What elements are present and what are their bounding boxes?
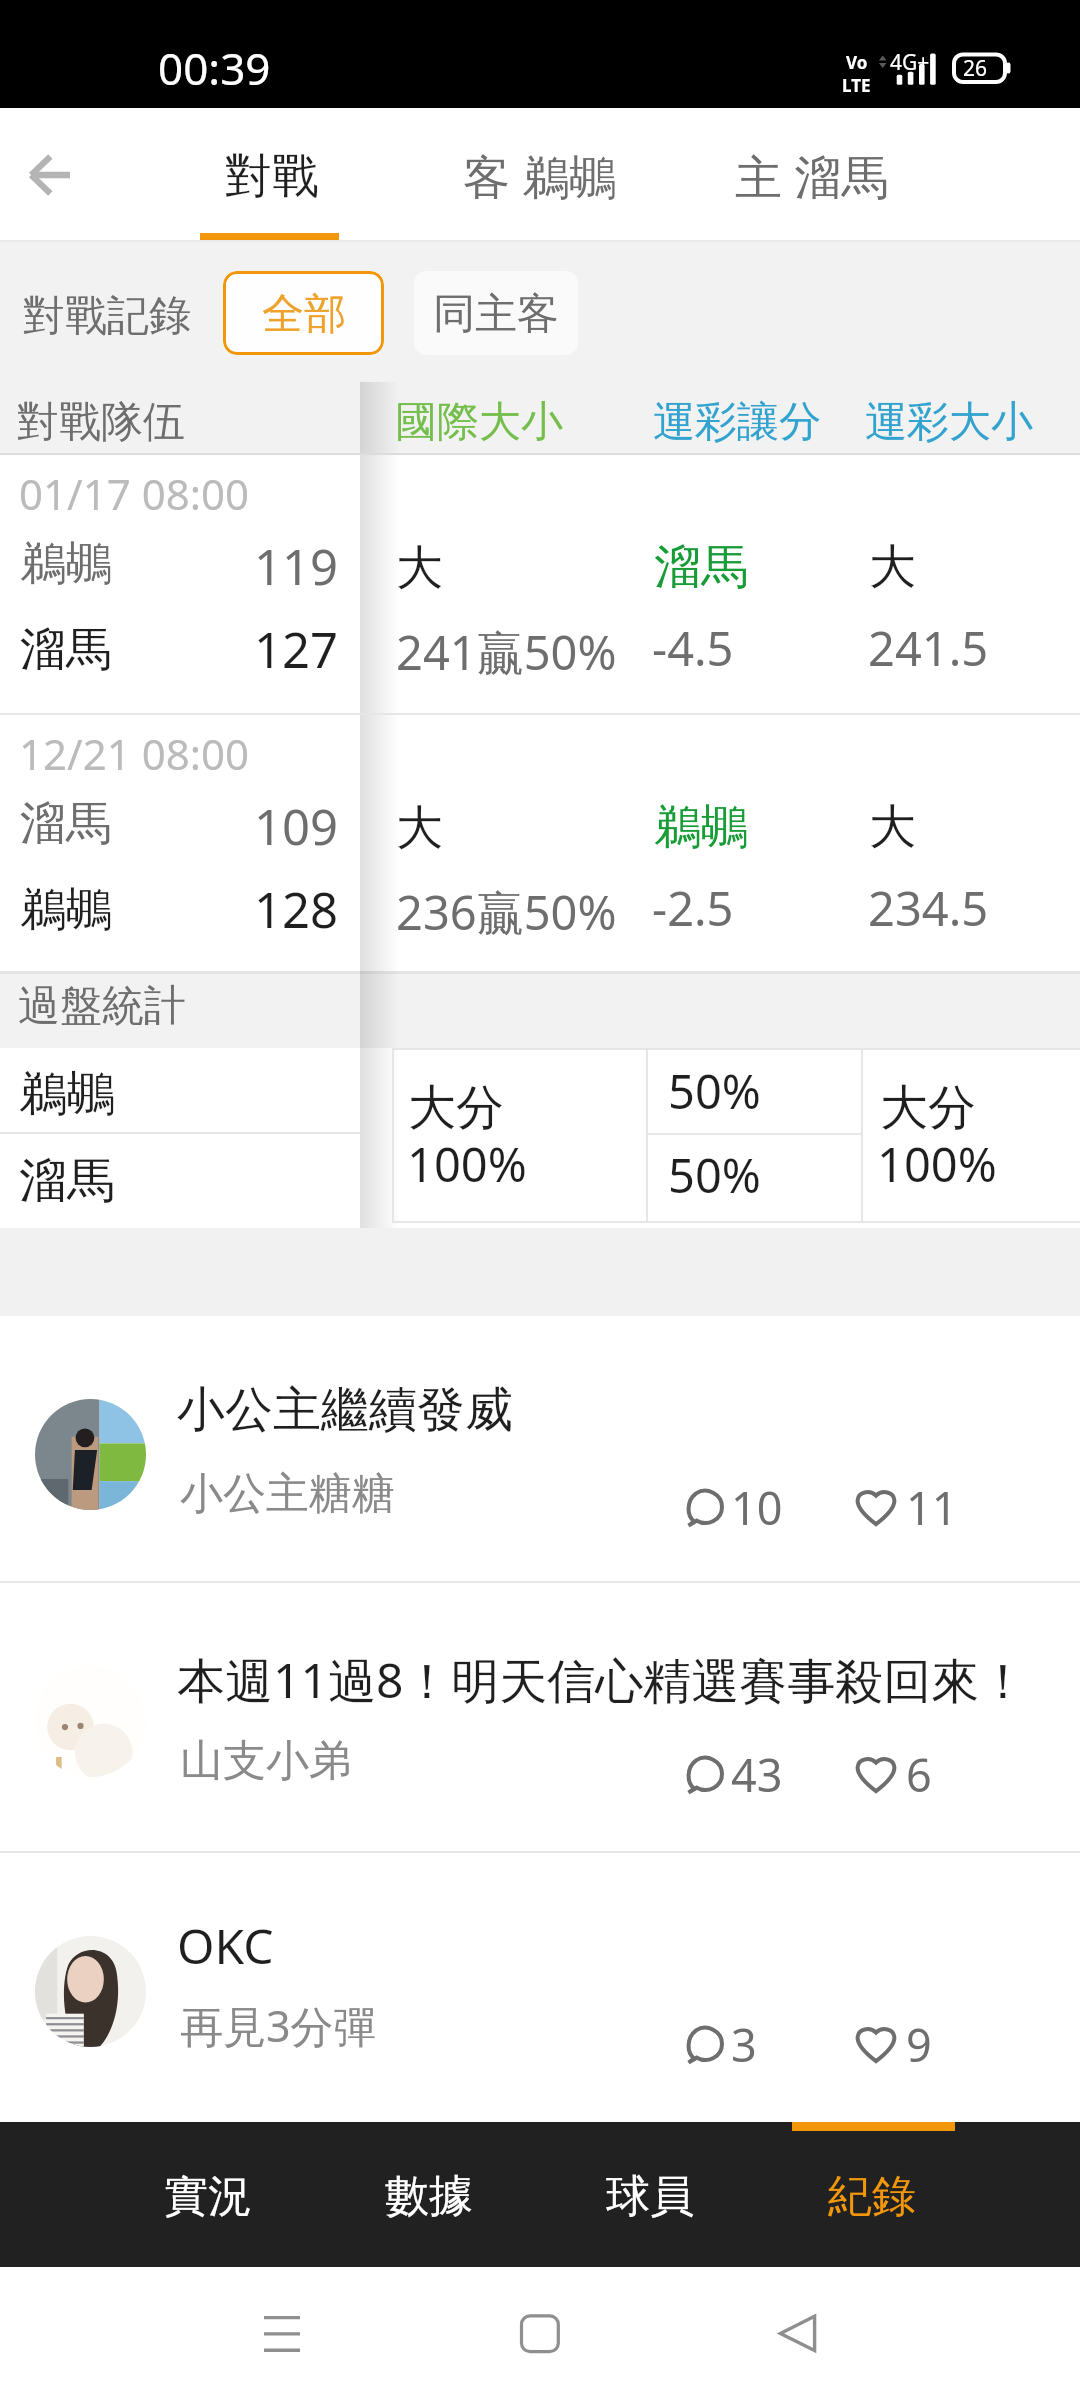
staticText: 26 bbox=[963, 54, 988, 83]
button[interactable]: Likes bbox=[852, 2013, 892, 2074]
staticText: 大分 bbox=[880, 1078, 976, 1138]
staticText: 鵜鶘 bbox=[20, 881, 112, 939]
button[interactable]: 主 溜馬 bbox=[717, 108, 906, 240]
button[interactable]: 紀錄 bbox=[761, 2122, 983, 2267]
staticText: 127 bbox=[254, 616, 339, 683]
button[interactable]: Recent apps bbox=[247, 2293, 317, 2363]
staticText: 6 bbox=[906, 1744, 932, 1805]
staticText: 實況 bbox=[164, 2169, 252, 2224]
staticText: 本週11過8！明天信心精選賽事殺回來！ bbox=[177, 1647, 1028, 1713]
staticText: 對戰 bbox=[225, 147, 319, 206]
staticText: LTE bbox=[842, 74, 871, 97]
staticText: 100% bbox=[877, 1132, 997, 1196]
staticText: 119 bbox=[254, 533, 339, 600]
staticText: 客 鵜鶘 bbox=[463, 144, 617, 208]
staticText: 43 bbox=[731, 1744, 783, 1805]
staticText: 鵜鶘 bbox=[19, 1064, 115, 1124]
staticText: 過盤統計 bbox=[18, 980, 186, 1033]
staticText: OKC bbox=[177, 1913, 274, 1978]
staticText: 溜馬 bbox=[654, 538, 748, 597]
staticText: 對戰隊伍 bbox=[17, 396, 185, 449]
button[interactable]: OKC bbox=[0, 1853, 1080, 2122]
button[interactable]: Back bbox=[761, 2293, 831, 2363]
button[interactable]: 數據 bbox=[318, 2122, 539, 2267]
staticText: 128 bbox=[254, 876, 339, 943]
staticText: 50% bbox=[668, 1143, 761, 1207]
staticText: -4.5 bbox=[652, 616, 734, 680]
button[interactable]: Comments bbox=[680, 2013, 716, 2074]
button[interactable]: Likes bbox=[852, 1743, 892, 1804]
staticText: 00:39 bbox=[158, 38, 271, 98]
staticText: 12/21 08:00 bbox=[19, 725, 249, 782]
staticText: 溜馬 bbox=[20, 795, 112, 853]
button[interactable]: 實況 bbox=[97, 2122, 318, 2267]
staticText: 對戰記錄 bbox=[23, 290, 191, 343]
staticText: 溜馬 bbox=[19, 1151, 115, 1211]
staticText: 241贏50% bbox=[396, 620, 617, 684]
button[interactable]: 小公主繼續發威 bbox=[0, 1316, 1080, 1581]
staticText: 運彩讓分 bbox=[653, 396, 821, 449]
staticText: 數據 bbox=[385, 2169, 473, 2224]
staticText: 236贏50% bbox=[396, 880, 617, 944]
staticText: 3 bbox=[731, 2014, 757, 2075]
staticText: 50% bbox=[668, 1059, 761, 1123]
staticText: 鵜鶘 bbox=[20, 535, 112, 593]
staticText: 主 溜馬 bbox=[735, 144, 889, 208]
button[interactable]: Back bbox=[5, 131, 93, 219]
staticText: 234.5 bbox=[868, 876, 989, 940]
staticText: 小公主繼續發威 bbox=[177, 1380, 513, 1440]
staticText: 同主客 bbox=[433, 288, 559, 341]
staticText: 全部 bbox=[262, 288, 346, 341]
staticText: 山支小弟 bbox=[180, 1734, 352, 1788]
button[interactable]: Comments bbox=[680, 1476, 732, 1537]
staticText: -2.5 bbox=[652, 876, 734, 940]
staticText: 國際大小 bbox=[395, 396, 563, 449]
staticText: 109 bbox=[254, 793, 339, 860]
staticText: 大 bbox=[396, 799, 443, 858]
staticText: 11 bbox=[906, 1477, 958, 1538]
staticText: 大 bbox=[869, 538, 916, 597]
staticText: Vo bbox=[846, 51, 868, 74]
staticText: 241.5 bbox=[868, 616, 989, 680]
button[interactable]: Likes bbox=[852, 1476, 904, 1537]
staticText: 10 bbox=[731, 1477, 783, 1538]
button[interactable]: 本週11過8！明天信心精選賽事殺回來！ bbox=[0, 1583, 1080, 1851]
staticText: 大分 bbox=[408, 1078, 504, 1138]
button[interactable]: Comments bbox=[680, 1743, 732, 1804]
staticText: 9 bbox=[906, 2014, 932, 2075]
button[interactable]: Home bbox=[505, 2293, 575, 2363]
staticText: 紀錄 bbox=[828, 2169, 916, 2224]
staticText: 鵜鶘 bbox=[654, 798, 748, 857]
staticText: 小公主糖糖 bbox=[180, 1467, 395, 1521]
staticText: 溜馬 bbox=[20, 621, 112, 679]
button[interactable]: 01/17 08:00 bbox=[0, 455, 1080, 713]
staticText: 大 bbox=[396, 539, 443, 598]
button[interactable]: 全部 bbox=[223, 271, 384, 355]
button[interactable]: 同主客 bbox=[414, 271, 578, 355]
button[interactable]: 對戰 bbox=[202, 108, 341, 240]
button[interactable]: 球員 bbox=[539, 2122, 761, 2267]
staticText: 4G+ bbox=[890, 48, 930, 77]
staticText: 100% bbox=[407, 1132, 527, 1196]
staticText: 球員 bbox=[606, 2169, 694, 2224]
button[interactable]: 客 鵜鶘 bbox=[441, 108, 639, 240]
staticText: 運彩大小 bbox=[865, 396, 1033, 449]
staticText: 再見3分彈 bbox=[180, 1996, 377, 2055]
staticText: 01/17 08:00 bbox=[19, 465, 249, 522]
staticText: 大 bbox=[869, 798, 916, 857]
button[interactable]: 12/21 08:00 bbox=[0, 715, 1080, 971]
